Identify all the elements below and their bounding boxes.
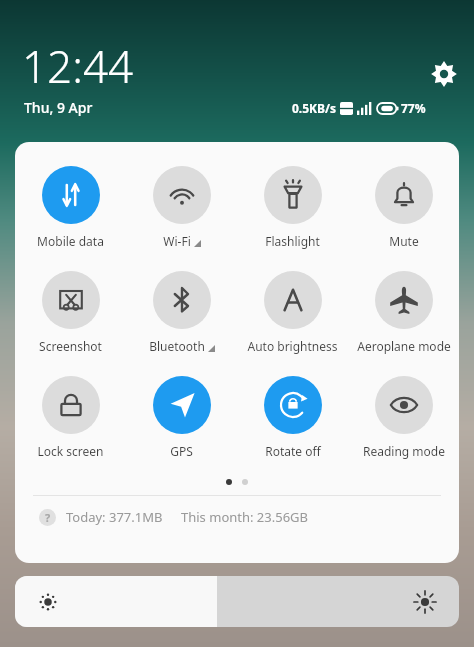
button[interactable]: Auto brightness	[237, 271, 348, 354]
staticText: 77%	[401, 100, 426, 116]
staticText: Mute	[389, 233, 419, 249]
staticText: Wi-Fi	[163, 233, 191, 249]
staticText: Mobile data	[37, 233, 104, 249]
button[interactable]: Reading mode	[348, 376, 459, 459]
button[interactable]: Flashlight	[237, 166, 348, 249]
staticText: 12:44	[22, 36, 134, 96]
staticText: This month: 23.56GB	[181, 508, 309, 526]
button[interactable]: Screenshot	[15, 271, 126, 354]
button[interactable]: Mobile data	[15, 166, 126, 249]
staticText: 0.5KB/s	[292, 100, 337, 116]
staticText: Aeroplane mode	[357, 338, 451, 354]
button[interactable]: Wi-Fi	[126, 166, 237, 249]
button[interactable]: Lock screen	[15, 376, 126, 459]
staticText: Thu, 9 Apr	[24, 98, 93, 117]
staticText: Today: 377.1MB	[66, 508, 163, 526]
staticText: Flashlight	[265, 233, 320, 249]
button[interactable]: Bluetooth	[126, 271, 237, 354]
staticText: Screenshot	[39, 338, 102, 354]
button[interactable]: Brightness	[15, 576, 459, 627]
staticText: ?	[45, 510, 51, 525]
button[interactable]: Rotate off	[237, 376, 348, 459]
staticText: Rotate off	[265, 443, 321, 459]
staticText: Lock screen	[37, 443, 104, 459]
button[interactable]: Mute	[348, 166, 459, 249]
button[interactable]: Settings	[430, 60, 458, 88]
staticText: Auto brightness	[247, 338, 338, 354]
button[interactable]: GPS	[126, 376, 237, 459]
staticText: GPS	[170, 443, 193, 459]
button[interactable]: ?	[39, 508, 459, 526]
staticText: Bluetooth	[149, 338, 205, 354]
button[interactable]: Aeroplane mode	[348, 271, 459, 354]
staticText: Reading mode	[363, 443, 445, 459]
